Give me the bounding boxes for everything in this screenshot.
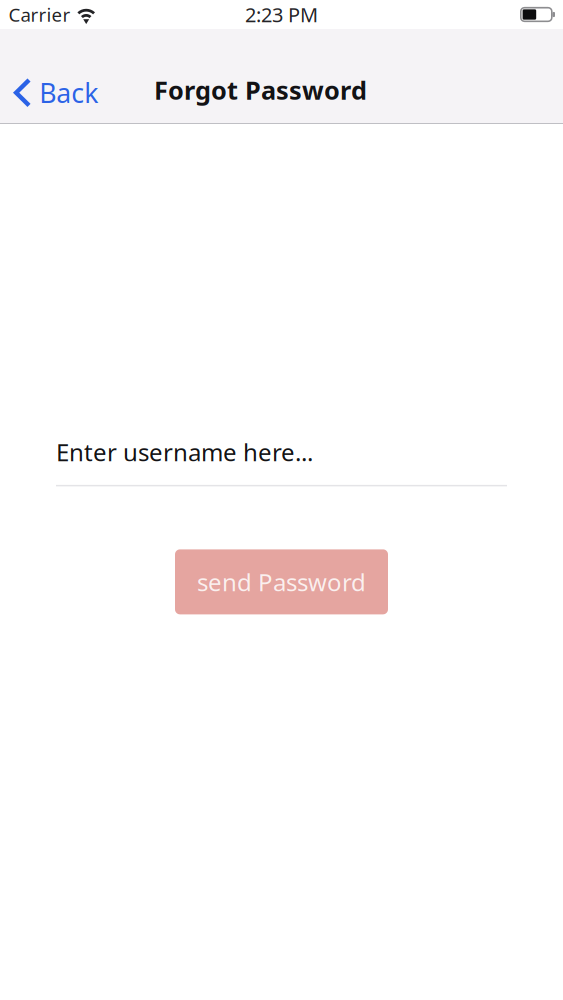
staticText: 2:23 PM — [245, 1, 318, 28]
staticText: Enter username here... — [56, 436, 313, 468]
staticText: Forgot Password — [154, 73, 367, 107]
staticText: Carrier — [8, 2, 70, 27]
button[interactable]: send Password — [175, 549, 388, 614]
staticText: Back — [39, 75, 98, 110]
button[interactable]: Back — [0, 29, 114, 118]
button[interactable]: Enter username here... — [0, 436, 563, 486]
staticText: send Password — [197, 566, 366, 598]
